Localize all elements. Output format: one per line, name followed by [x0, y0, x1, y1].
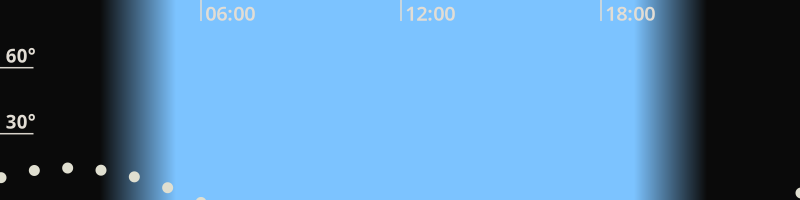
staticText: 60° [6, 43, 36, 68]
staticText: 12:00 [405, 0, 455, 26]
staticText: 30° [6, 109, 36, 134]
staticText: 18:00 [605, 0, 655, 26]
staticText: 06:00 [205, 0, 255, 26]
